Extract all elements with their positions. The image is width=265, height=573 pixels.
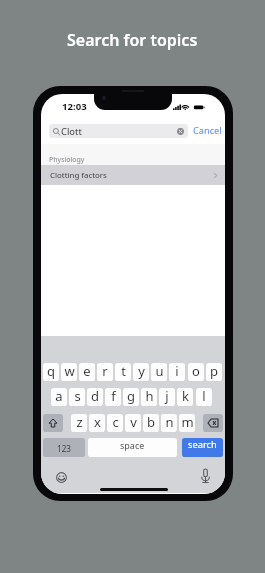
staticText: Physiology bbox=[49, 155, 85, 165]
staticText: y bbox=[138, 363, 145, 380]
staticText: d bbox=[91, 388, 99, 405]
button[interactable]: v bbox=[125, 414, 141, 432]
staticText: f bbox=[111, 388, 116, 405]
staticText: p bbox=[210, 363, 218, 380]
staticText: e bbox=[83, 363, 91, 380]
staticText: z bbox=[76, 414, 83, 431]
staticText: search bbox=[188, 438, 217, 451]
staticText: q bbox=[47, 363, 55, 380]
staticText: s bbox=[74, 388, 81, 405]
button[interactable]: Backspace bbox=[203, 414, 223, 432]
staticText: j bbox=[165, 388, 169, 405]
button[interactable]: Clott bbox=[49, 124, 188, 138]
button[interactable]: Emoji bbox=[55, 471, 67, 483]
button[interactable]: y bbox=[133, 363, 149, 381]
staticText: o bbox=[192, 363, 200, 380]
button[interactable]: w bbox=[61, 363, 77, 381]
button[interactable]: g bbox=[123, 388, 139, 406]
staticText: space bbox=[120, 439, 145, 451]
button[interactable]: q bbox=[43, 363, 59, 381]
button[interactable]: o bbox=[188, 363, 204, 381]
staticText: c bbox=[112, 414, 119, 431]
staticText: v bbox=[130, 414, 137, 431]
staticText: x bbox=[94, 414, 101, 431]
staticText: a bbox=[55, 388, 63, 405]
button[interactable]: z bbox=[71, 414, 87, 432]
button[interactable]: d bbox=[87, 388, 103, 406]
staticText: l bbox=[202, 388, 206, 405]
staticText: b bbox=[147, 414, 155, 431]
button[interactable]: r bbox=[97, 363, 113, 381]
button[interactable]: Clotting factors bbox=[41, 165, 225, 185]
staticText: n bbox=[165, 414, 174, 431]
button[interactable]: a bbox=[51, 388, 67, 406]
staticText: Clotting factors bbox=[50, 170, 107, 181]
button[interactable]: k bbox=[177, 388, 193, 406]
staticText: Clott bbox=[61, 125, 82, 138]
button[interactable]: p bbox=[206, 363, 222, 381]
staticText: g bbox=[127, 388, 135, 405]
button[interactable]: 123 bbox=[43, 438, 85, 457]
button[interactable]: search bbox=[182, 438, 223, 457]
button[interactable]: m bbox=[179, 414, 195, 432]
button[interactable]: s bbox=[69, 388, 85, 406]
button[interactable]: e bbox=[79, 363, 95, 381]
button[interactable]: u bbox=[151, 363, 167, 381]
staticText: w bbox=[64, 363, 75, 380]
staticText: t bbox=[121, 363, 126, 380]
button[interactable]: t bbox=[115, 363, 131, 381]
staticText: 123 bbox=[57, 443, 72, 454]
button[interactable]: Voice input bbox=[201, 469, 210, 483]
button[interactable]: l bbox=[196, 388, 212, 406]
staticText: Search for topics bbox=[67, 29, 198, 51]
staticText: u bbox=[155, 363, 164, 380]
button[interactable]: h bbox=[141, 388, 157, 406]
button[interactable]: i bbox=[169, 363, 185, 381]
button[interactable]: Shift bbox=[43, 414, 63, 432]
staticText: 12:03 bbox=[62, 100, 87, 113]
button[interactable]: space bbox=[88, 438, 177, 457]
button[interactable]: c bbox=[107, 414, 123, 432]
staticText: k bbox=[182, 388, 189, 405]
button[interactable]: x bbox=[89, 414, 105, 432]
staticText: m bbox=[181, 414, 194, 431]
button[interactable]: f bbox=[105, 388, 121, 406]
staticText: i bbox=[175, 363, 179, 380]
button[interactable]: n bbox=[161, 414, 177, 432]
staticText: r bbox=[102, 363, 108, 380]
button[interactable]: b bbox=[143, 414, 159, 432]
button[interactable]: Cancel bbox=[193, 124, 222, 137]
staticText: h bbox=[145, 388, 154, 405]
staticText: Cancel bbox=[193, 124, 222, 137]
button[interactable]: Clear text bbox=[175, 126, 186, 137]
button[interactable]: j bbox=[159, 388, 175, 406]
